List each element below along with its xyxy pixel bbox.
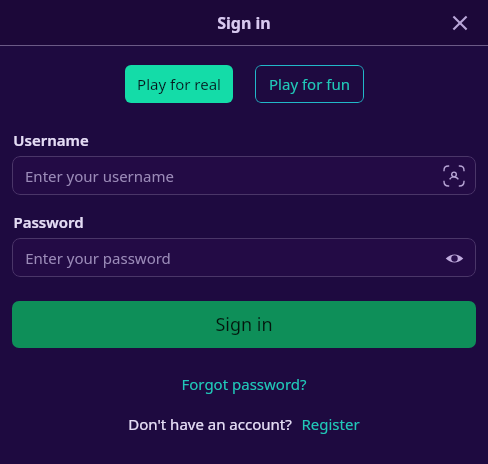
button[interactable]: Close [440, 3, 480, 43]
staticText: Sign in [217, 12, 271, 34]
button[interactable]: Register [301, 414, 360, 434]
button[interactable]: Play for fun [255, 65, 364, 103]
staticText: Enter your password [25, 248, 171, 268]
button[interactable]: Enter your password [12, 238, 476, 277]
button[interactable]: Sign in [12, 301, 476, 348]
staticText: Enter your username [25, 166, 174, 186]
staticText: Don't have an account? [128, 414, 292, 434]
button[interactable]: Enter your username [12, 156, 476, 195]
button[interactable]: Play for real [125, 65, 233, 103]
staticText: Password [13, 212, 84, 232]
staticText: Forgot password? [181, 374, 307, 394]
staticText: Register [301, 414, 360, 434]
button[interactable]: Show password [443, 247, 465, 269]
button[interactable]: Forgot password? [175, 372, 313, 396]
staticText: Play for fun [269, 74, 350, 94]
button[interactable]: Face ID sign in [443, 165, 465, 187]
staticText: Sign in [215, 312, 273, 337]
staticText: Play for real [137, 74, 221, 94]
staticText: Username [13, 130, 89, 150]
